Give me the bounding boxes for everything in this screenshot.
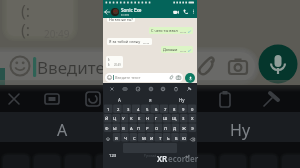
staticText: З: [182, 116, 185, 122]
button[interactable]: С чего ты взял: [151, 28, 191, 33]
button[interactable]: 3: [123, 105, 133, 114]
staticText: 9: [182, 107, 185, 113]
button[interactable]: Ы: [111, 124, 119, 134]
button[interactable]: А: [103, 94, 135, 105]
button[interactable]: 4: [133, 105, 143, 114]
button[interactable]: Б: [172, 134, 180, 144]
button[interactable]: М: [139, 134, 148, 144]
button[interactable]: Space: [123, 144, 177, 168]
staticText: И: [150, 136, 154, 142]
button[interactable]: Keyboard tool: [158, 84, 167, 93]
staticText: XR: [157, 153, 168, 164]
button[interactable]: Video call: [171, 5, 181, 18]
staticText: Щ: [172, 116, 177, 122]
staticText: Ж: [182, 126, 186, 132]
button[interactable]: Backspace: [188, 134, 197, 144]
button[interactable]: Keyboard tool: [184, 84, 193, 93]
button[interactable]: А: [127, 124, 135, 134]
button[interactable]: Ж: [179, 124, 188, 134]
staticText: Ю: [182, 136, 187, 142]
button[interactable]: Г: [152, 114, 161, 124]
button[interactable]: Я: [112, 134, 121, 144]
button[interactable]: Keyboard tool: [171, 84, 180, 93]
button[interactable]: Ш: [161, 114, 170, 124]
staticText: А: [130, 126, 133, 132]
staticText: У: [122, 116, 125, 122]
button[interactable]: Ю: [180, 134, 188, 144]
button[interactable]: Е: [135, 114, 143, 124]
staticText: 5: [146, 107, 149, 113]
button[interactable]: П: [135, 124, 143, 134]
button[interactable]: 5: [143, 105, 152, 114]
staticText: 123: [109, 153, 117, 159]
button[interactable]: 9: [179, 105, 188, 114]
button[interactable]: 1: [103, 105, 113, 114]
staticText: (:: [108, 62, 111, 67]
staticText: 2: [117, 107, 120, 113]
button[interactable]: Ну: [166, 94, 197, 105]
button[interactable]: Докажи: [163, 47, 191, 52]
staticText: Ц: [113, 116, 117, 122]
button[interactable]: Н: [143, 114, 152, 124]
button[interactable]: Shift: [103, 134, 112, 144]
staticText: 20:49: [44, 27, 70, 41]
button[interactable]: Keyboard tool: [146, 84, 155, 93]
button[interactable]: Т: [156, 134, 164, 144]
button[interactable]: 7: [161, 105, 170, 114]
button[interactable]: More options: [190, 5, 197, 18]
button[interactable]: 0: [188, 105, 197, 114]
staticText: Ч: [124, 136, 127, 142]
button[interactable]: О: [152, 124, 161, 134]
staticText: 7: [164, 107, 167, 113]
staticText: 3: [127, 107, 130, 113]
button[interactable]: Ь: [164, 134, 172, 144]
button[interactable]: Щ: [170, 114, 179, 124]
button[interactable]: 6: [152, 105, 161, 114]
button[interactable]: У: [119, 114, 127, 124]
button[interactable]: И: [148, 134, 156, 144]
staticText: Э: [191, 126, 194, 132]
button[interactable]: Record voice message: [185, 73, 195, 83]
staticText: Sonic Exe: [121, 7, 142, 13]
button[interactable]: Введите текст: [107, 73, 181, 82]
button[interactable]: 2: [113, 105, 123, 114]
button[interactable]: К: [127, 114, 135, 124]
staticText: М: [142, 136, 146, 142]
staticText: Введите те: [37, 56, 127, 79]
staticText: А: [118, 97, 121, 103]
button[interactable]: Р: [143, 124, 152, 134]
staticText: 20:49: [180, 30, 187, 33]
button[interactable]: Ч: [121, 134, 130, 144]
button[interactable]: Ф: [103, 124, 111, 134]
button[interactable]: В: [119, 124, 127, 134]
button[interactable]: С: [130, 134, 139, 144]
button[interactable]: 8: [170, 105, 179, 114]
button[interactable]: 123: [103, 144, 123, 168]
button[interactable]: Д: [170, 124, 179, 134]
button[interactable]: (:: [108, 57, 121, 67]
staticText: Русский: [144, 154, 157, 158]
staticText: 20:49: [114, 63, 121, 67]
button[interactable]: Ц: [111, 114, 119, 124]
staticText: (:: [21, 19, 31, 41]
staticText: Ну: [230, 119, 251, 141]
button[interactable]: Enter: [177, 144, 197, 168]
staticText: В: [122, 126, 125, 132]
button[interactable]: Keyboard tool: [133, 84, 142, 93]
button[interactable]: З: [179, 114, 188, 124]
button[interactable]: Я за тобой слежу: [109, 39, 150, 44]
button[interactable]: Profile photo: [111, 8, 119, 16]
button[interactable]: Keyboard tool: [120, 84, 129, 93]
staticText: ecorder: [168, 153, 199, 164]
button[interactable]: Keyboard tool: [107, 84, 116, 93]
button[interactable]: Э: [188, 124, 197, 134]
button[interactable]: Й: [103, 114, 111, 124]
staticText: Ну: [179, 97, 185, 103]
button[interactable]: Л: [161, 124, 170, 134]
staticText: Докажи: [163, 47, 178, 52]
button[interactable]: Back: [103, 5, 111, 18]
button[interactable]: я: [135, 94, 166, 105]
button[interactable]: Х: [188, 114, 197, 124]
staticText: Ы: [113, 126, 117, 132]
button[interactable]: Call: [181, 5, 190, 18]
